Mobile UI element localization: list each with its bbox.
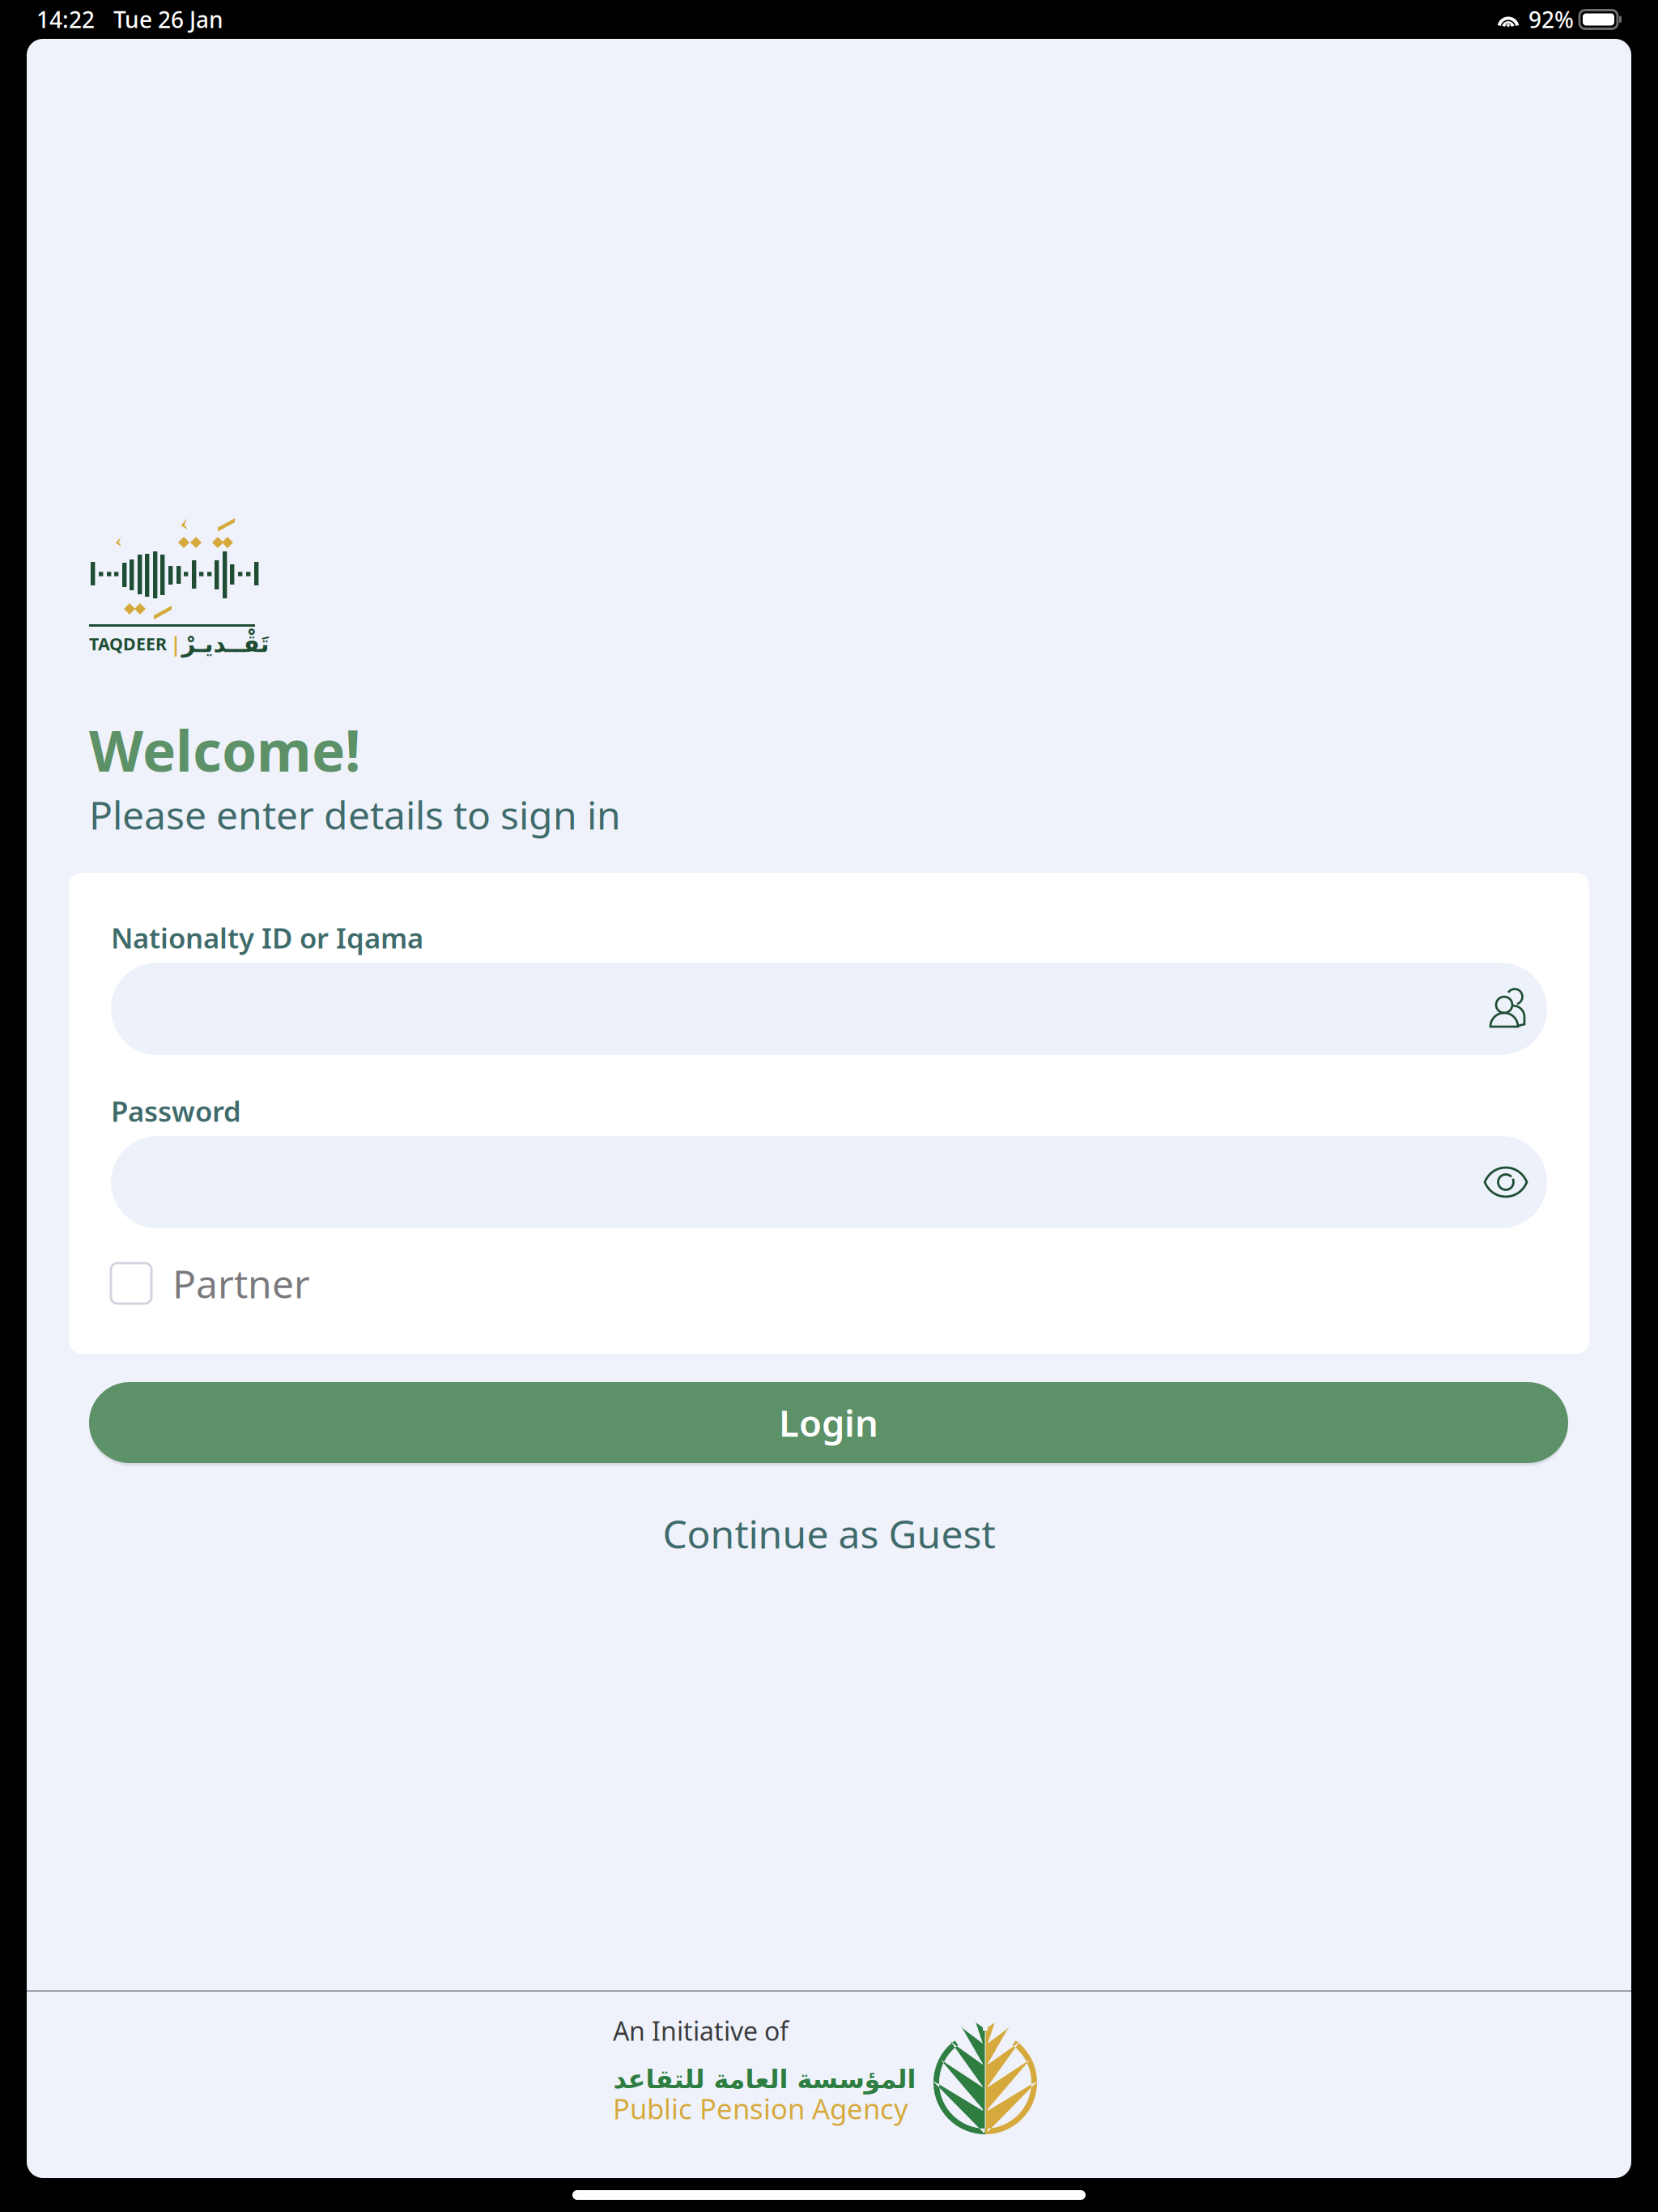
staticText: | bbox=[170, 630, 181, 657]
button[interactable]: Login bbox=[89, 1379, 1568, 1466]
staticText: Partner bbox=[172, 1257, 310, 1309]
staticText: تَقْــديـرْ bbox=[181, 630, 269, 657]
button[interactable]: Continue as Guest bbox=[27, 1505, 1631, 1562]
staticText: المؤسسة العامة للتقاعد bbox=[613, 2064, 916, 2094]
staticText: Public Pension Agency bbox=[613, 2090, 908, 2127]
staticText: Welcome! bbox=[89, 713, 361, 787]
staticText: Nationalty ID or Iqama bbox=[111, 919, 423, 956]
staticText: Continue as Guest bbox=[663, 1508, 995, 1559]
staticText: Please enter details to sign in bbox=[89, 789, 621, 840]
staticText: 14:22 bbox=[36, 4, 95, 34]
staticText: Password bbox=[111, 1092, 241, 1129]
button[interactable]: Partner bbox=[111, 1261, 1547, 1306]
staticText: 92% bbox=[1528, 4, 1574, 34]
staticText: Login bbox=[779, 1398, 878, 1447]
staticText: Tue 26 Jan bbox=[113, 4, 223, 34]
staticText: TAQDEER bbox=[89, 632, 167, 655]
staticText: An Initiative of bbox=[613, 2013, 789, 2048]
